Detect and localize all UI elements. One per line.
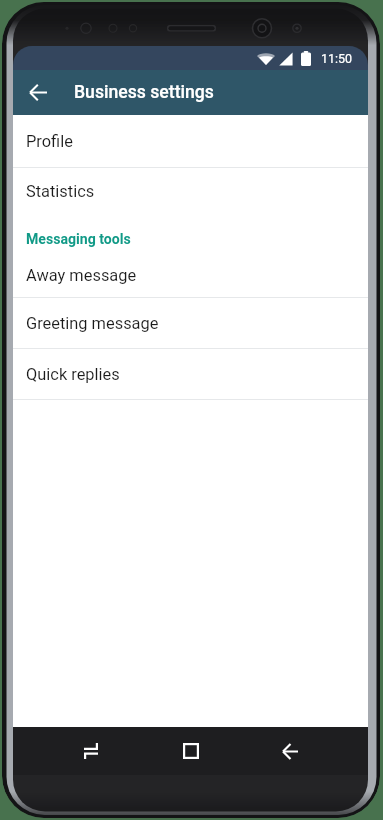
button[interactable]: Home (141, 727, 240, 775)
staticText: Business settings (74, 82, 214, 103)
staticText: Greeting message (26, 314, 159, 333)
staticText: Statistics (26, 182, 95, 201)
staticText: Messaging tools (26, 231, 131, 248)
button[interactable]: Back (13, 70, 64, 115)
button[interactable]: Quick replies (13, 349, 368, 399)
button[interactable]: Profile (13, 115, 368, 167)
staticText: Profile (26, 132, 73, 151)
button[interactable]: Back (213, 727, 368, 775)
staticText: 11:50 (321, 51, 353, 66)
button[interactable]: Greeting message (13, 298, 368, 348)
staticText: Quick replies (26, 365, 120, 384)
button[interactable]: Recent apps (13, 727, 169, 775)
staticText: Away message (26, 266, 137, 285)
button[interactable]: Away message (13, 256, 368, 295)
button[interactable]: Statistics (13, 168, 368, 215)
